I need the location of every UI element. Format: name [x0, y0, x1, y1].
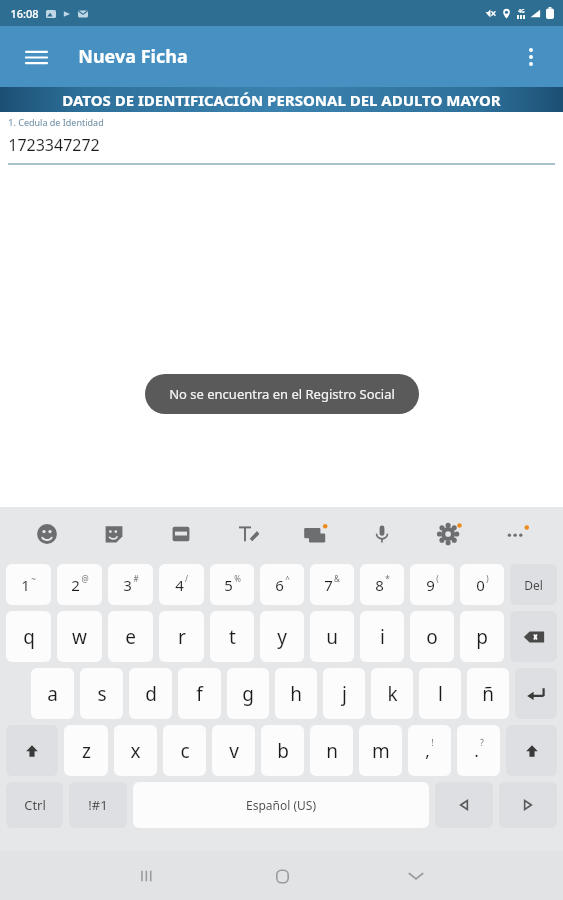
button[interactable]: Ctrl: [6, 782, 63, 828]
staticText: a: [47, 681, 58, 707]
button[interactable]: .: [457, 725, 500, 776]
button[interactable]: g: [227, 668, 269, 719]
button[interactable]: d: [129, 668, 172, 719]
staticText: f: [196, 681, 203, 707]
button[interactable]: Shift: [6, 725, 58, 776]
staticText: e: [125, 624, 136, 650]
staticText: Español (US): [246, 797, 316, 813]
button[interactable]: Hide keyboard: [392, 852, 440, 900]
staticText: p: [476, 624, 488, 650]
staticText: 1: [21, 575, 30, 595]
button[interactable]: 7: [310, 564, 354, 605]
button[interactable]: y: [260, 611, 304, 662]
button[interactable]: o: [410, 611, 454, 662]
button[interactable]: Emoji: [14, 511, 80, 557]
button[interactable]: Recent apps: [123, 852, 171, 900]
staticText: Del: [524, 577, 543, 593]
button[interactable]: b: [261, 725, 304, 776]
staticText: c: [180, 738, 190, 764]
button[interactable]: Shift: [506, 725, 557, 776]
button[interactable]: Enter: [515, 668, 557, 719]
button[interactable]: Home: [258, 852, 306, 900]
button[interactable]: q: [6, 611, 51, 662]
staticText: ~: [31, 573, 36, 584]
button[interactable]: 8: [360, 564, 404, 605]
button[interactable]: s: [80, 668, 123, 719]
staticText: 1. Cedula de Identidad: [8, 116, 104, 128]
button[interactable]: 5: [210, 564, 254, 605]
staticText: m: [372, 738, 390, 764]
staticText: 7: [324, 575, 333, 595]
button[interactable]: f: [178, 668, 221, 719]
button[interactable]: GIF: [147, 511, 214, 557]
button[interactable]: l: [419, 668, 461, 719]
staticText: 4G: [518, 8, 525, 15]
button[interactable]: !#1: [69, 782, 127, 828]
button[interactable]: Settings: [415, 511, 482, 557]
staticText: i: [380, 624, 385, 650]
staticText: v: [229, 738, 239, 764]
staticText: 1723347272: [8, 134, 100, 156]
button[interactable]: z: [64, 725, 108, 776]
button[interactable]: m: [359, 725, 402, 776]
button[interactable]: No se encuentra en el Registro Social: [169, 385, 395, 403]
button[interactable]: Español (US): [133, 782, 429, 828]
button[interactable]: c: [163, 725, 206, 776]
button[interactable]: Move cursor left: [435, 782, 493, 828]
staticText: ^: [285, 573, 290, 584]
button[interactable]: w: [57, 611, 102, 662]
button[interactable]: Voice input: [348, 511, 415, 557]
staticText: h: [290, 681, 302, 707]
button[interactable]: More: [482, 511, 549, 557]
staticText: ,: [425, 739, 430, 762]
button[interactable]: r: [159, 611, 204, 662]
button[interactable]: Del: [510, 564, 557, 605]
button[interactable]: 3: [108, 564, 153, 605]
button[interactable]: 6: [260, 564, 304, 605]
staticText: DATOS DE IDENTIFICACIÓN PERSONAL DEL ADU…: [62, 90, 501, 110]
button[interactable]: DATOS DE IDENTIFICACIÓN PERSONAL DEL ADU…: [0, 87, 563, 112]
staticText: d: [145, 681, 157, 707]
button[interactable]: Stickers: [80, 511, 147, 557]
staticText: u: [326, 624, 338, 650]
staticText: Nueva Ficha: [78, 44, 188, 69]
button[interactable]: u: [310, 611, 354, 662]
button[interactable]: a: [31, 668, 74, 719]
button[interactable]: h: [275, 668, 317, 719]
staticText: 0: [476, 575, 485, 595]
button[interactable]: Move cursor right: [499, 782, 557, 828]
button[interactable]: n: [310, 725, 353, 776]
button[interactable]: t: [210, 611, 254, 662]
button[interactable]: Backspace: [510, 611, 557, 662]
staticText: /: [185, 573, 188, 584]
button[interactable]: v: [212, 725, 255, 776]
staticText: @: [81, 573, 89, 584]
staticText: 2: [71, 575, 80, 595]
button[interactable]: More options: [511, 37, 551, 77]
button[interactable]: 1723347272: [8, 134, 555, 156]
button[interactable]: Handwriting: [214, 511, 281, 557]
button[interactable]: 4: [159, 564, 204, 605]
staticText: *: [385, 573, 390, 584]
button[interactable]: ,: [408, 725, 451, 776]
button[interactable]: x: [114, 725, 157, 776]
button[interactable]: Keyboard modes: [281, 511, 348, 557]
button[interactable]: p: [460, 611, 504, 662]
staticText: o: [426, 624, 438, 650]
staticText: !: [431, 737, 434, 748]
staticText: g: [242, 681, 254, 707]
staticText: l: [438, 681, 443, 707]
button[interactable]: 9: [410, 564, 454, 605]
button[interactable]: k: [371, 668, 413, 719]
button[interactable]: ñ: [467, 668, 509, 719]
button[interactable]: 0: [460, 564, 504, 605]
staticText: w: [72, 624, 87, 650]
button[interactable]: j: [323, 668, 365, 719]
button[interactable]: i: [360, 611, 404, 662]
button[interactable]: 1: [6, 564, 51, 605]
staticText: %: [234, 573, 241, 584]
button[interactable]: 2: [57, 564, 102, 605]
button[interactable]: e: [108, 611, 153, 662]
button[interactable]: Open navigation menu: [16, 37, 56, 77]
staticText: z: [82, 738, 91, 764]
